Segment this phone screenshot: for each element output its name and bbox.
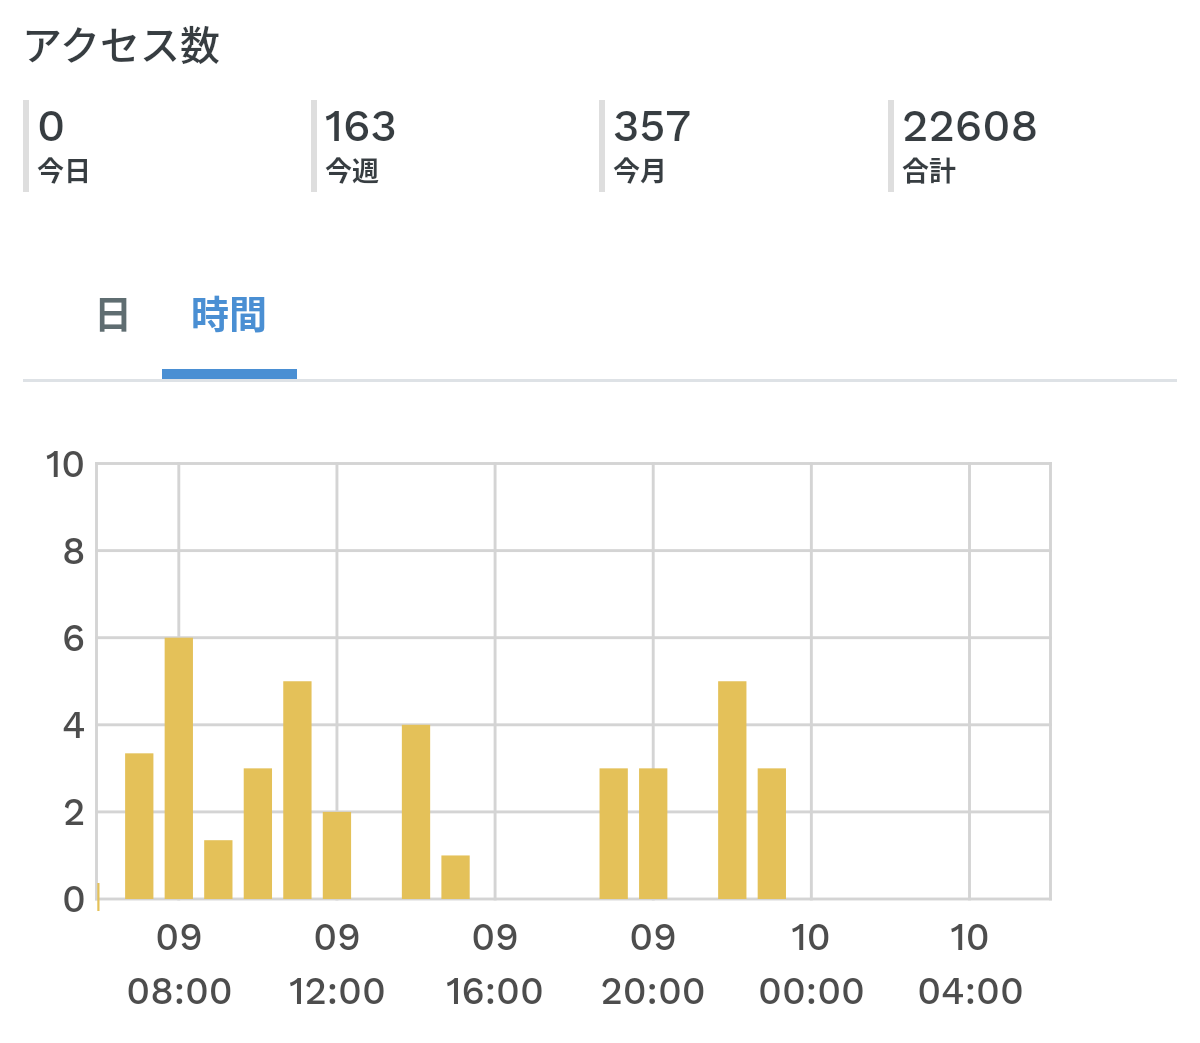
staticText: 16:00 xyxy=(446,969,544,1014)
staticText: 09 xyxy=(471,915,519,960)
button[interactable]: 時間 xyxy=(162,261,297,361)
button[interactable]: 357 xyxy=(599,95,888,187)
staticText: 10 xyxy=(950,915,990,960)
staticText: 8 xyxy=(62,529,86,574)
staticText: 0 xyxy=(62,877,86,922)
staticText: 今週 xyxy=(325,150,379,189)
staticText: アクセス数 xyxy=(22,14,220,72)
staticText: 08:00 xyxy=(126,969,233,1014)
staticText: 12:00 xyxy=(289,969,386,1014)
button[interactable]: 0 xyxy=(23,95,311,187)
staticText: 合計 xyxy=(902,150,956,189)
staticText: 10 xyxy=(46,442,86,487)
button[interactable]: 日 xyxy=(65,261,162,361)
staticText: 22608 xyxy=(902,99,1039,152)
staticText: 10 xyxy=(791,915,831,960)
other: Hourly access count bar chart xyxy=(93,460,1055,936)
staticText: 4 xyxy=(62,703,86,748)
staticText: 6 xyxy=(62,616,86,661)
staticText: 357 xyxy=(613,99,692,152)
staticText: 20:00 xyxy=(600,969,706,1014)
staticText: 0 xyxy=(37,99,66,152)
staticText: 今月 xyxy=(613,150,667,189)
button[interactable]: 22608 xyxy=(888,95,1177,187)
button[interactable]: 163 xyxy=(311,95,599,187)
staticText: 00:00 xyxy=(758,969,865,1014)
staticText: 09 xyxy=(629,915,677,960)
staticText: 09 xyxy=(313,915,361,960)
staticText: 04:00 xyxy=(917,969,1024,1014)
staticText: 09 xyxy=(155,915,203,960)
staticText: 時間 xyxy=(191,284,268,339)
staticText: 2 xyxy=(63,790,86,835)
staticText: 今日 xyxy=(37,150,91,189)
staticText: 163 xyxy=(325,99,397,152)
staticText: 日 xyxy=(94,284,133,339)
